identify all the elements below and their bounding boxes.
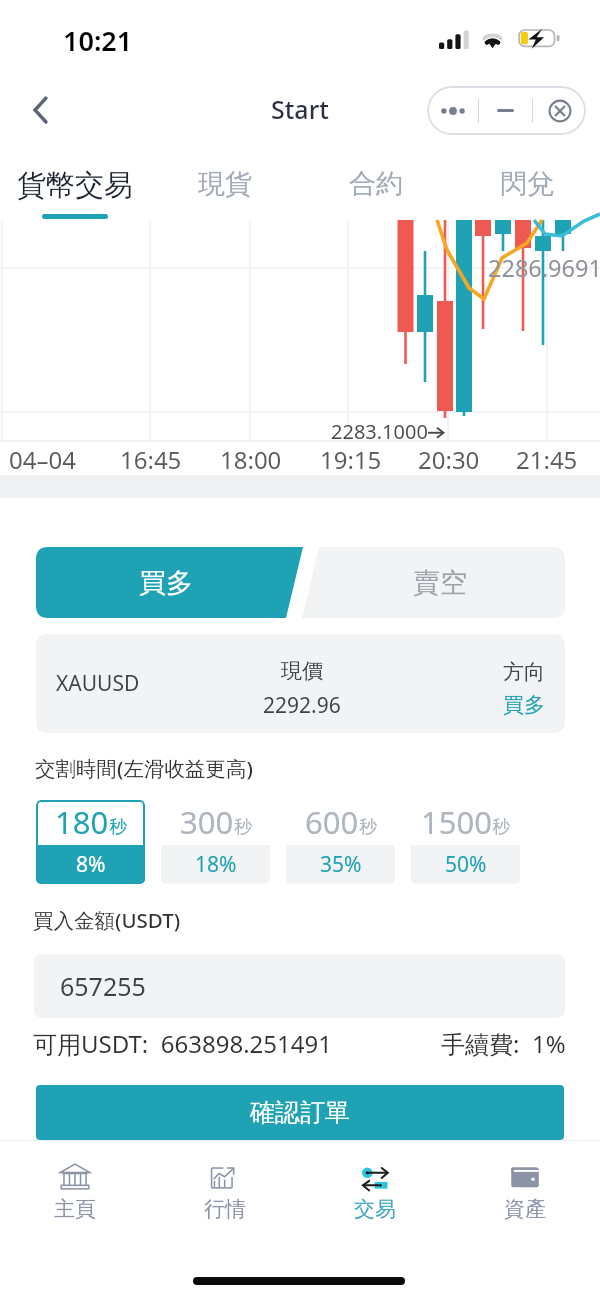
staticText: 確認訂單: [250, 1097, 350, 1128]
staticText: 交易: [354, 1196, 396, 1222]
button[interactable]: 1500: [411, 800, 520, 884]
button[interactable]: 交易: [325, 1161, 425, 1231]
button[interactable]: 現貨: [189, 150, 261, 220]
staticText: 買多: [503, 692, 545, 718]
button[interactable]: 貨幣交易: [13, 150, 137, 220]
staticText: 10:21: [63, 22, 133, 59]
staticText: 8%: [76, 850, 106, 879]
button[interactable]: 180: [36, 800, 145, 884]
staticText: 買入金額(USDT): [33, 906, 181, 934]
button[interactable]: 行情: [175, 1161, 275, 1231]
staticText: 657255: [60, 969, 146, 1003]
staticText: 18%: [195, 850, 237, 879]
staticText: 買多: [139, 566, 193, 600]
staticText: 方向: [503, 659, 545, 685]
staticText: 18:00: [220, 443, 282, 476]
staticText: 2283.1000: [331, 418, 428, 445]
staticText: 1500: [421, 801, 492, 843]
staticText: 行情: [204, 1196, 246, 1222]
staticText: 50%: [445, 850, 487, 879]
staticText: 180: [55, 801, 109, 843]
staticText: 04–04: [9, 443, 76, 476]
staticText: 20:30: [418, 443, 480, 476]
staticText: 資產: [504, 1196, 546, 1222]
button[interactable]: More: [427, 86, 478, 135]
staticText: 秒: [359, 816, 377, 839]
button[interactable]: 300: [161, 800, 270, 884]
button[interactable]: 600: [286, 800, 395, 884]
button[interactable]: 閃兌: [491, 150, 563, 220]
staticText: 賣空: [413, 566, 467, 600]
button[interactable]: Minimize: [479, 86, 532, 135]
staticText: 手續費: 1%: [441, 1027, 566, 1060]
button[interactable]: 657255: [34, 954, 565, 1018]
staticText: 貨幣交易: [17, 167, 133, 204]
staticText: 秒: [109, 816, 127, 839]
button[interactable]: 資產: [475, 1161, 575, 1231]
staticText: 2292.96: [263, 691, 341, 720]
staticText: XAUUSD: [56, 669, 140, 698]
staticText: Start: [271, 92, 329, 126]
button[interactable]: 合約: [340, 150, 412, 220]
button[interactable]: Close: [533, 86, 586, 135]
staticText: 2286.9691: [488, 252, 600, 284]
staticText: 21:45: [516, 443, 578, 476]
button[interactable]: 主頁: [25, 1161, 125, 1231]
staticText: 16:45: [120, 443, 182, 476]
staticText: 秒: [234, 816, 252, 839]
staticText: 300: [180, 801, 234, 843]
staticText: 600: [305, 801, 359, 843]
button[interactable]: 賣空: [302, 547, 565, 618]
staticText: 現價: [281, 658, 323, 684]
button[interactable]: 確認訂單: [36, 1085, 564, 1140]
staticText: 閃兌: [500, 167, 554, 201]
staticText: 35%: [320, 850, 362, 879]
staticText: 主頁: [54, 1196, 96, 1222]
staticText: 現貨: [198, 167, 252, 201]
staticText: 交割時間(左滑收益更高): [35, 754, 253, 782]
button[interactable]: 買多: [36, 547, 303, 618]
button[interactable]: Back: [16, 86, 64, 134]
staticText: 合約: [349, 167, 403, 201]
staticText: 19:15: [320, 443, 382, 476]
staticText: 可用USDT: 663898.251491: [33, 1027, 332, 1060]
staticText: 秒: [492, 816, 510, 839]
